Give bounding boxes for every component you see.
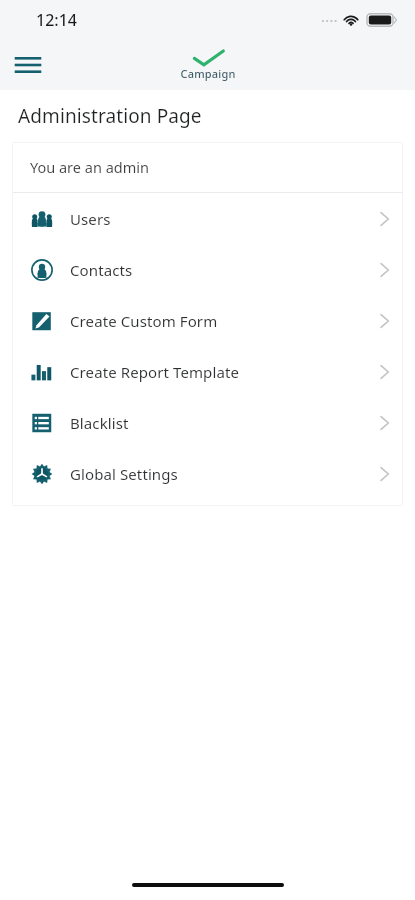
- staticText: You are an admin: [30, 157, 149, 177]
- button[interactable]: Open navigation menu: [8, 45, 48, 85]
- staticText: Administration Page: [18, 103, 202, 129]
- button[interactable]: Contacts: [12, 244, 403, 295]
- button[interactable]: Create Custom Form: [12, 295, 403, 346]
- staticText: Global Settings: [70, 464, 178, 484]
- staticText: Campaign: [180, 66, 236, 81]
- button[interactable]: Create Report Template: [12, 346, 403, 397]
- button[interactable]: Campaign: [180, 50, 236, 81]
- staticText: Users: [70, 209, 111, 229]
- staticText: Create Report Template: [70, 362, 239, 382]
- button[interactable]: Blacklist: [12, 397, 403, 448]
- staticText: Contacts: [70, 260, 133, 280]
- staticText: Blacklist: [70, 413, 129, 433]
- staticText: Create Custom Form: [70, 311, 218, 331]
- button[interactable]: Users: [12, 193, 403, 244]
- staticText: 12:14: [36, 9, 77, 31]
- button[interactable]: Global Settings: [12, 448, 403, 499]
